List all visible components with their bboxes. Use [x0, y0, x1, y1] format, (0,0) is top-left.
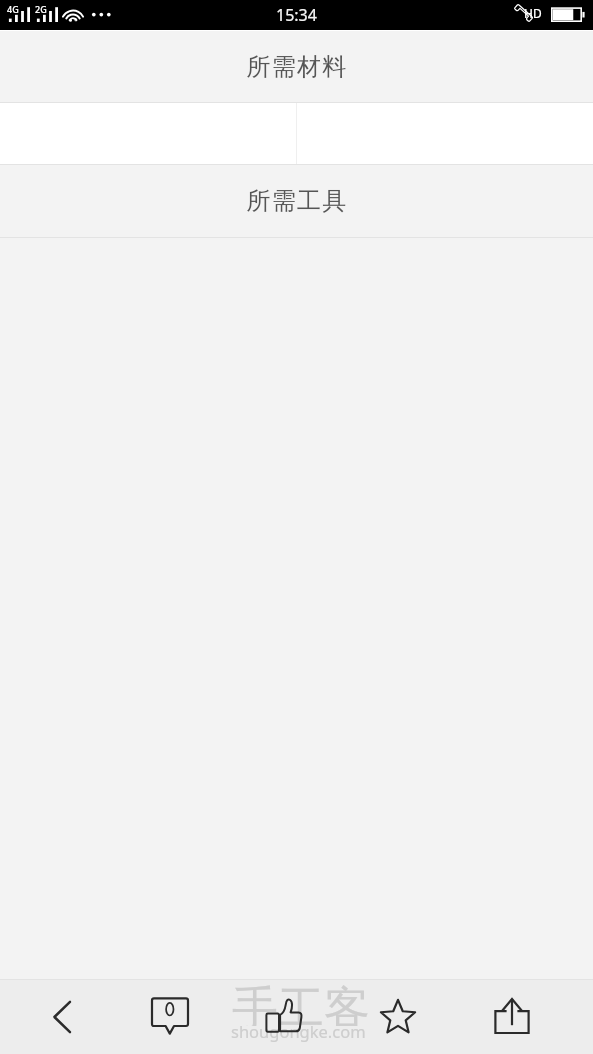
button[interactable]: Share [485, 990, 539, 1044]
button[interactable]: Like [257, 990, 311, 1044]
staticText: 所需材料 [246, 52, 348, 82]
staticText: 手工客 [232, 980, 370, 1026]
staticText: 15:34 [276, 4, 317, 26]
button[interactable]: Back [35, 990, 89, 1044]
staticText: 2G [35, 3, 47, 15]
staticText: 所需工具 [246, 186, 348, 216]
staticText: HD [524, 5, 542, 21]
button[interactable]: Comments [143, 990, 197, 1044]
staticText: shougongke.com [231, 1020, 366, 1042]
staticText: 4G [7, 3, 19, 15]
button[interactable]: Favorite [371, 990, 425, 1044]
